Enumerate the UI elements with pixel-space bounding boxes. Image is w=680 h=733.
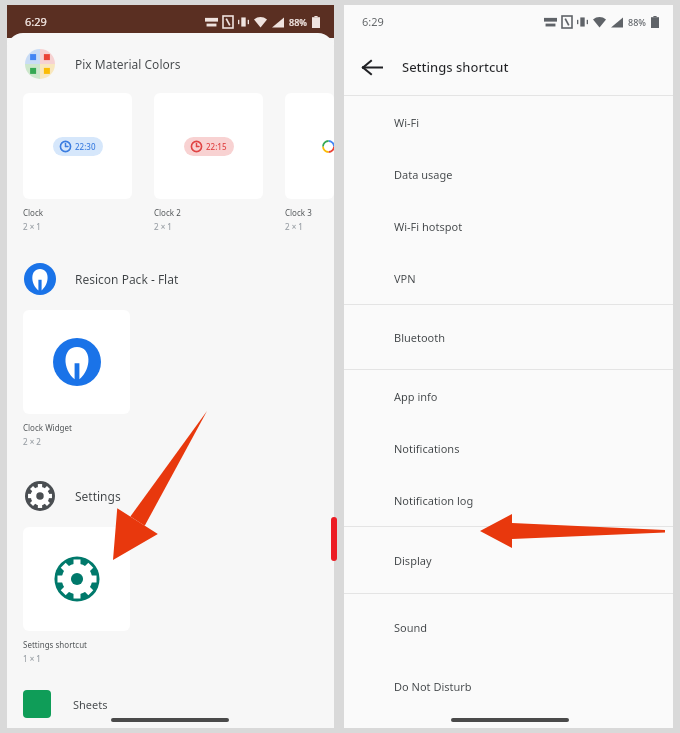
staticText: Clock xyxy=(23,207,44,218)
staticText: 22:15 xyxy=(206,141,227,152)
staticText: 88% xyxy=(289,16,307,28)
staticText: 88% xyxy=(628,16,646,28)
staticText: Wi-Fi hotspot xyxy=(394,219,463,234)
button[interactable]: 22:15 xyxy=(154,93,263,232)
staticText: Display xyxy=(394,553,432,568)
button[interactable]: Settings xyxy=(7,473,334,519)
button[interactable]: Settings shortcut xyxy=(23,527,130,664)
staticText: Sound xyxy=(394,620,428,635)
button[interactable]: 22:30 xyxy=(23,93,132,232)
staticText: 22:30 xyxy=(75,141,96,152)
button[interactable]: Notification log xyxy=(344,474,673,526)
staticText: Sheets xyxy=(73,697,108,712)
staticText: Pix Material Colors xyxy=(75,56,181,72)
staticText: Settings shortcut xyxy=(23,639,87,650)
staticText: Settings xyxy=(75,488,121,504)
staticText: Wi-Fi xyxy=(394,115,420,130)
button[interactable]: Bluetooth xyxy=(344,305,673,369)
staticText: Clock 3 xyxy=(285,207,312,218)
button[interactable]: Do Not Disturb xyxy=(344,660,673,712)
button[interactable]: VPN xyxy=(344,252,673,304)
button[interactable]: Sound xyxy=(344,594,673,660)
staticText: Settings shortcut xyxy=(402,58,509,76)
staticText: Notification log xyxy=(394,493,474,508)
staticText: 6:29 xyxy=(362,14,384,29)
staticText: VPN xyxy=(394,271,416,286)
button[interactable]: Display xyxy=(344,527,673,593)
button[interactable]: Notifications xyxy=(344,422,673,474)
button[interactable]: Pix Material Colors xyxy=(7,41,334,87)
button[interactable]: Back xyxy=(352,47,392,87)
staticText: Bluetooth xyxy=(394,330,446,345)
staticText: 2 × 1 xyxy=(23,221,41,232)
button[interactable]: Wi-Fi xyxy=(344,96,673,148)
staticText: 2 × 2 xyxy=(23,436,41,447)
button[interactable]: Wi-Fi hotspot xyxy=(344,200,673,252)
staticText: Notifications xyxy=(394,441,460,456)
staticText: Clock 2 xyxy=(154,207,181,218)
staticText: Clock Widget xyxy=(23,422,72,433)
button[interactable]: App info xyxy=(344,370,673,422)
staticText: 2 × 1 xyxy=(285,221,303,232)
staticText: 2 × 1 xyxy=(154,221,172,232)
button[interactable]: Clock Widget xyxy=(23,310,130,447)
button[interactable]: Resicon Pack - Flat xyxy=(7,256,334,302)
staticText: Data usage xyxy=(394,167,453,182)
staticText: 1 × 1 xyxy=(23,653,41,664)
button[interactable]: 2 xyxy=(285,93,334,232)
staticText: Resicon Pack - Flat xyxy=(75,271,179,287)
staticText: Do Not Disturb xyxy=(394,679,472,694)
staticText: App info xyxy=(394,389,438,404)
staticText: 6:29 xyxy=(25,14,47,29)
button[interactable]: Data usage xyxy=(344,148,673,200)
